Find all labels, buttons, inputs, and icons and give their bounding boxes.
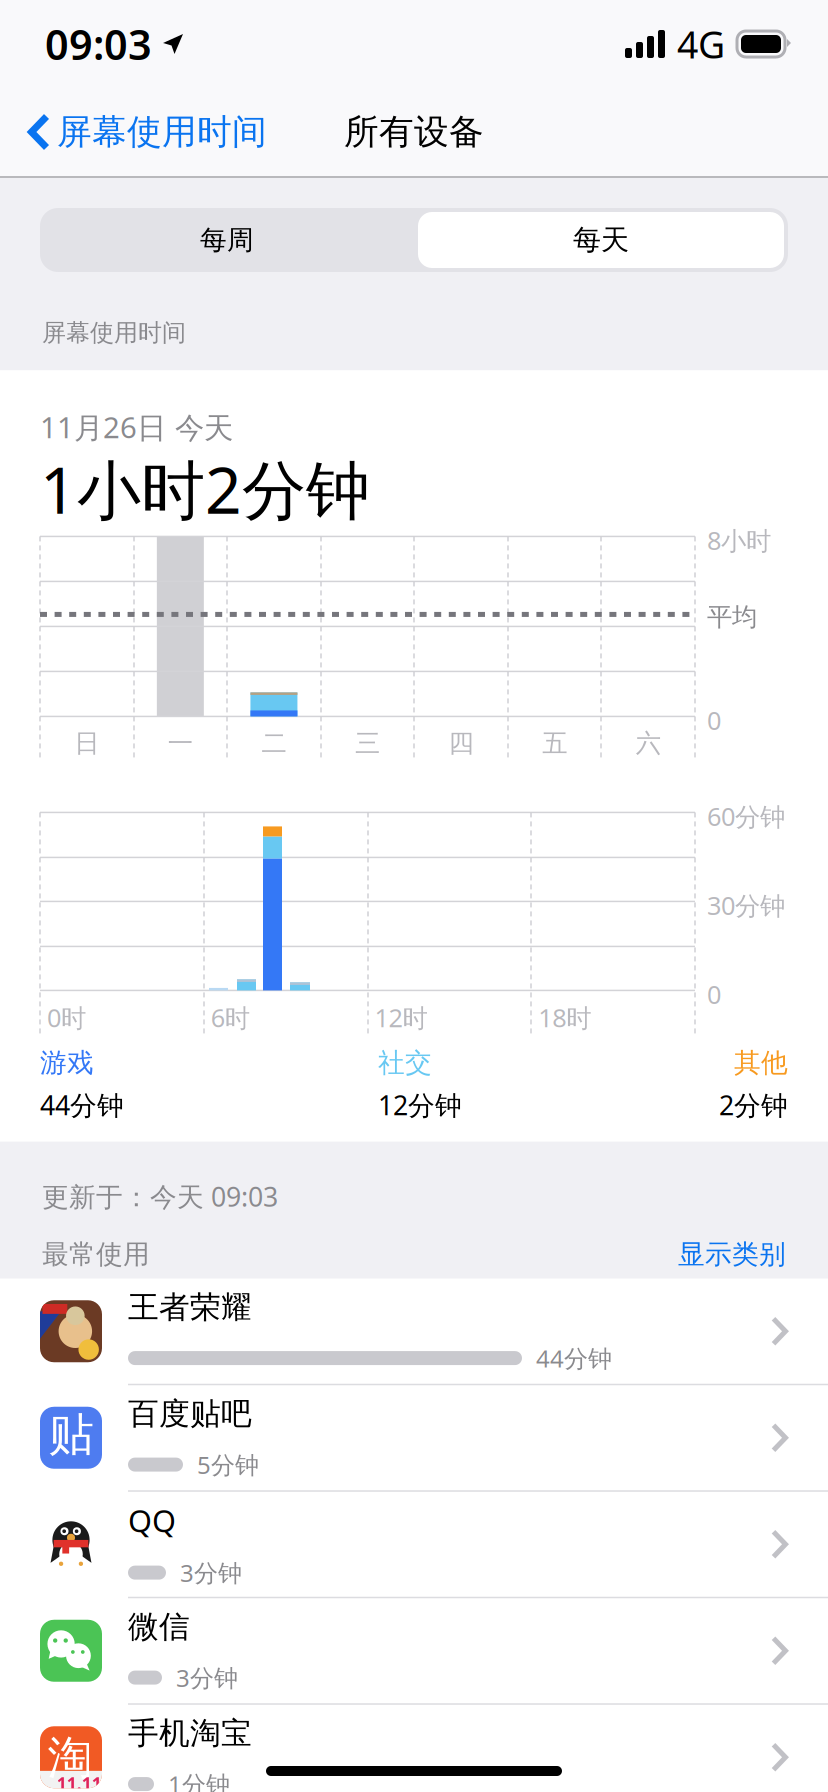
staticText: 手机淘宝 [128,1714,252,1752]
staticText: 四 [449,728,474,759]
staticText: 6时 [211,1001,250,1034]
button[interactable]: QQ [0,1492,828,1598]
button[interactable]: 显示类别 [678,1238,786,1271]
staticText: 0 [707,703,721,737]
staticText: 1小时2分钟 [40,446,370,531]
staticText: 所有设备 [344,111,484,153]
staticText: 18时 [538,1001,591,1034]
staticText: 每天 [573,223,629,257]
staticText: 2分钟 [719,1087,788,1123]
staticText: 12时 [374,1001,427,1034]
staticText: 5分钟 [197,1449,259,1481]
staticText: 三 [355,728,380,759]
staticText: 屏幕使用时间 [42,318,186,347]
staticText: 日 [74,728,99,759]
button[interactable]: 淘 [0,1705,828,1792]
staticText: 其他 [734,1046,788,1079]
staticText: 44分钟 [536,1342,612,1374]
staticText: 社交 [378,1046,432,1079]
staticText: 游戏 [40,1046,94,1079]
staticText: 一 [168,728,193,759]
staticText: 百度贴吧 [128,1395,252,1433]
button[interactable]: 贴 [0,1385,828,1492]
staticText: 11月26日 今天 [40,407,233,446]
staticText: 屏幕使用时间 [57,111,267,153]
staticText: 12分钟 [378,1087,462,1123]
staticText: 二 [261,728,286,759]
staticText: 60分钟 [707,799,785,833]
staticText: 44分钟 [40,1087,124,1123]
staticText: 3分钟 [180,1557,242,1589]
staticText: 更新于：今天 09:03 [42,1179,278,1214]
button[interactable]: 微信 [0,1598,828,1705]
staticText: 五 [542,728,567,759]
staticText: 显示类别 [678,1238,786,1271]
button[interactable]: 屏幕使用时间 [0,98,281,166]
button[interactable]: 每天 [414,208,788,272]
staticText: 0时 [47,1001,86,1034]
staticText: 3分钟 [176,1662,238,1694]
button[interactable]: 每周 [40,208,414,272]
staticText: 30分钟 [707,888,785,922]
staticText: 8小时 [707,523,771,557]
staticText: 王者荣耀 [128,1288,252,1326]
staticText: 4G [677,19,725,69]
staticText: 微信 [128,1608,190,1646]
staticText: 六 [636,728,661,759]
staticText: 11.11 [57,1772,102,1792]
staticText: QQ [128,1500,176,1541]
staticText: 淘 [47,1730,92,1786]
staticText: 平均 [707,601,757,632]
staticText: 0 [707,977,721,1011]
staticText: 最常使用 [42,1238,150,1271]
button[interactable]: 王者荣耀 [0,1279,828,1385]
staticText: 1分钟 [168,1768,230,1792]
staticText: 09:03 [45,17,152,71]
staticText: 每周 [200,224,254,256]
staticText: 贴 [48,1407,93,1463]
